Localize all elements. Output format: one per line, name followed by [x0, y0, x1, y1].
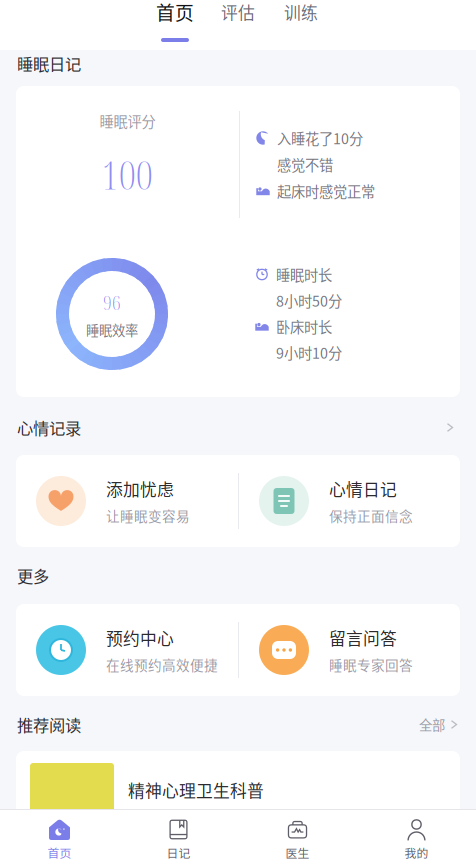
button[interactable]: 首页: [150, 0, 200, 50]
staticText: 睡眠时长: [276, 264, 332, 285]
staticText: 保持正面信念: [329, 506, 413, 525]
staticText: 预约中心: [106, 625, 174, 650]
staticText: 8小时50分: [276, 290, 342, 311]
button[interactable]: 医生: [238, 810, 357, 859]
button[interactable]: 我的: [357, 810, 476, 859]
staticText: 医生: [285, 844, 309, 859]
staticText: 睡眠效率: [86, 320, 138, 339]
staticText: 添加忧虑: [106, 476, 174, 501]
button[interactable]: 心情记录: [441, 418, 459, 436]
button[interactable]: 心情日记: [239, 455, 460, 547]
button[interactable]: 日记: [119, 810, 238, 859]
staticText: 96: [103, 289, 121, 316]
button[interactable]: 预约中心: [16, 604, 238, 696]
button[interactable]: 全部: [419, 715, 459, 734]
staticText: 心情日记: [329, 476, 397, 501]
button[interactable]: 训练: [276, 0, 326, 50]
staticText: 让睡眠变容易: [106, 506, 190, 525]
staticText: 卧床时长: [276, 316, 332, 337]
staticText: 更多: [17, 564, 49, 587]
staticText: 感觉不错: [277, 154, 333, 175]
staticText: 精神心理卫生科普: [128, 778, 264, 802]
staticText: 100: [102, 148, 153, 201]
staticText: 入睡花了10分: [277, 128, 363, 148]
button[interactable]: 首页: [0, 810, 119, 859]
staticText: 训练: [284, 0, 318, 24]
button[interactable]: 评估: [213, 0, 263, 50]
staticText: 9小时10分: [276, 342, 342, 363]
staticText: 起床时感觉正常: [277, 181, 375, 201]
staticText: 首页: [156, 0, 194, 25]
button[interactable]: 添加忧虑: [16, 455, 238, 547]
staticText: 全部: [419, 715, 445, 734]
staticText: 评估: [221, 0, 255, 24]
staticText: 心情记录: [17, 416, 81, 439]
staticText: 日记: [166, 844, 190, 859]
staticText: 在线预约高效便捷: [106, 655, 218, 674]
staticText: 我的: [404, 844, 428, 859]
button[interactable]: 留言问答: [239, 604, 460, 696]
staticText: 留言问答: [329, 625, 397, 650]
staticText: 睡眠评分: [99, 111, 155, 131]
staticText: 睡眠日记: [17, 52, 81, 75]
staticText: 睡眠专家回答: [329, 655, 413, 674]
staticText: 推荐阅读: [17, 713, 81, 736]
staticText: 首页: [47, 844, 71, 859]
